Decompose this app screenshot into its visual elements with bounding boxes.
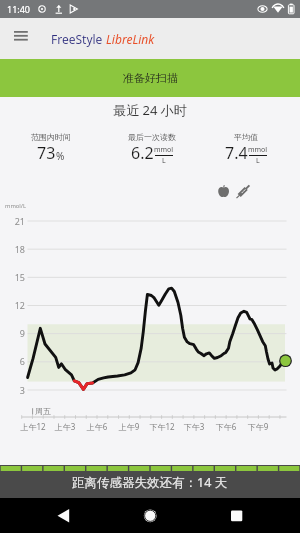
staticText: 下午9 (238, 421, 278, 432)
staticText: 73 (37, 142, 56, 164)
button[interactable]: Home (130, 498, 170, 533)
button[interactable]: 距离传感器失效还有：14 天 (0, 465, 300, 498)
staticText: 上午9 (109, 421, 149, 432)
staticText: 准备好扫描 (123, 71, 178, 85)
button[interactable]: 准备好扫描 (0, 59, 300, 97)
staticText: 9 (6, 327, 25, 339)
staticText: 上午3 (45, 421, 85, 432)
staticText: 范围内时间 (11, 132, 91, 142)
staticText: 3 (6, 384, 25, 396)
staticText: mmol (248, 145, 268, 155)
staticText: 18 (6, 243, 25, 255)
staticText: 21 (6, 215, 25, 227)
staticText: 7.4 (225, 142, 248, 164)
staticText: L (256, 156, 260, 166)
staticText: 上午6 (77, 421, 117, 432)
staticText: 下午12 (142, 421, 182, 432)
staticText: 平均值 (206, 132, 286, 142)
staticText: 距离传感器失效还有：14 天 (72, 474, 228, 491)
staticText: L (162, 156, 166, 166)
staticText: % (56, 149, 65, 163)
staticText: 周五 (35, 406, 51, 416)
button[interactable]: Insulin notes (236, 185, 251, 200)
button[interactable]: Open navigation menu (0, 18, 41, 59)
staticText: 上午12 (13, 421, 53, 432)
staticText: LibreLink (103, 31, 155, 47)
staticText: 下午3 (174, 421, 214, 432)
button[interactable]: Food notes (218, 184, 232, 198)
staticText: mmol/L (5, 202, 27, 210)
staticText: 12 (6, 299, 25, 311)
button[interactable]: Back (43, 498, 83, 533)
staticText: 11:40 (7, 3, 31, 15)
button[interactable]: Recent apps (217, 498, 257, 533)
staticText: 6.2 (131, 142, 154, 164)
staticText: FreeStyle (51, 31, 103, 47)
staticText: mmol (154, 145, 174, 155)
staticText: 6 (6, 355, 25, 367)
staticText: 最近 24 小时 (0, 101, 300, 119)
staticText: 15 (6, 271, 25, 283)
staticText: 下午6 (206, 421, 246, 432)
staticText: 最后一次读数 (112, 132, 192, 142)
